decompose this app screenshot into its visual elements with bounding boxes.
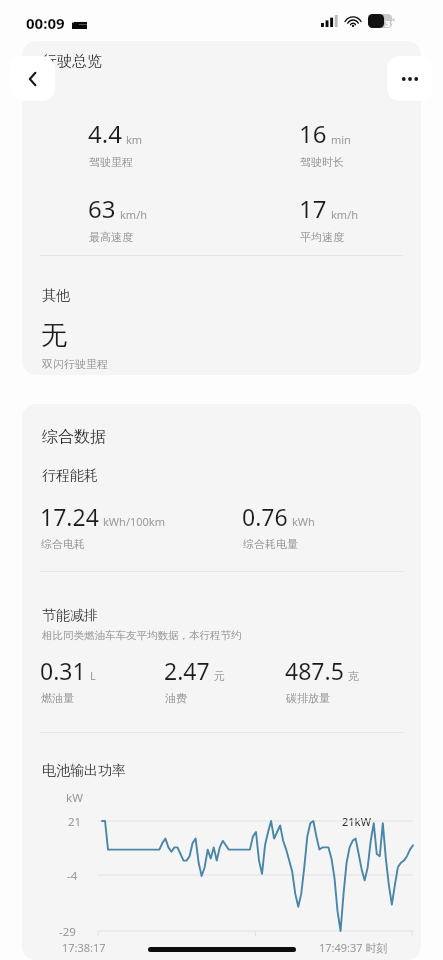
button[interactable]: More options bbox=[387, 56, 432, 101]
staticText: 综合数据 bbox=[42, 427, 106, 447]
staticText: 2.47 bbox=[164, 655, 210, 686]
staticText: 其他 bbox=[42, 287, 70, 305]
staticText: 元 bbox=[214, 669, 225, 683]
staticText: 平均速度 bbox=[300, 230, 344, 244]
staticText: 4.4 bbox=[88, 117, 122, 150]
staticText: 行程能耗 bbox=[42, 467, 98, 485]
staticText: km/h bbox=[331, 207, 359, 222]
staticText: 21 bbox=[68, 814, 82, 830]
staticText: 21kW bbox=[342, 814, 372, 829]
staticText: 487.5 bbox=[285, 655, 344, 686]
staticText: 驾驶时长 bbox=[300, 155, 344, 169]
staticText: kW bbox=[66, 790, 83, 806]
staticText: 无 bbox=[41, 319, 67, 352]
staticText: 油费 bbox=[165, 691, 187, 705]
staticText: 16 bbox=[299, 117, 327, 150]
staticText: 0.76 bbox=[242, 501, 288, 532]
staticText: 节能减排 bbox=[42, 607, 98, 625]
staticText: 碳排放量 bbox=[286, 691, 330, 705]
staticText: 63 bbox=[88, 192, 116, 225]
staticText: kWh/100km bbox=[103, 514, 166, 529]
staticText: kWh bbox=[292, 514, 315, 529]
staticText: 最高速度 bbox=[89, 230, 133, 244]
staticText: 驾驶里程 bbox=[89, 155, 133, 169]
staticText: 电池输出功率 bbox=[42, 762, 126, 780]
staticText: 17:38:17 bbox=[62, 940, 106, 955]
staticText: -4 bbox=[67, 868, 78, 884]
staticText: 双闪行驶里程 bbox=[42, 357, 108, 371]
staticText: km/h bbox=[120, 207, 148, 222]
staticText: km bbox=[126, 132, 143, 147]
staticText: 综合电耗 bbox=[41, 537, 85, 551]
staticText: L bbox=[90, 668, 96, 683]
staticText: 综合耗电量 bbox=[243, 537, 298, 551]
staticText: 相比同类燃油车车友平均数据，本行程节约 bbox=[42, 629, 242, 642]
staticText: 行驶总览 bbox=[42, 52, 102, 71]
staticText: min bbox=[331, 132, 351, 147]
staticText: 17:49:37 时刻 bbox=[319, 940, 388, 955]
staticText: 0.31 bbox=[40, 655, 86, 686]
staticText: 克 bbox=[348, 669, 359, 683]
staticText: 00:09 bbox=[26, 13, 65, 33]
staticText: 燃油量 bbox=[41, 691, 74, 705]
staticText: 31 bbox=[385, 17, 396, 30]
button[interactable]: Back bbox=[10, 56, 55, 101]
staticText: 17.24 bbox=[40, 501, 99, 532]
staticText: -29 bbox=[59, 924, 76, 940]
staticText: 17 bbox=[299, 192, 327, 225]
